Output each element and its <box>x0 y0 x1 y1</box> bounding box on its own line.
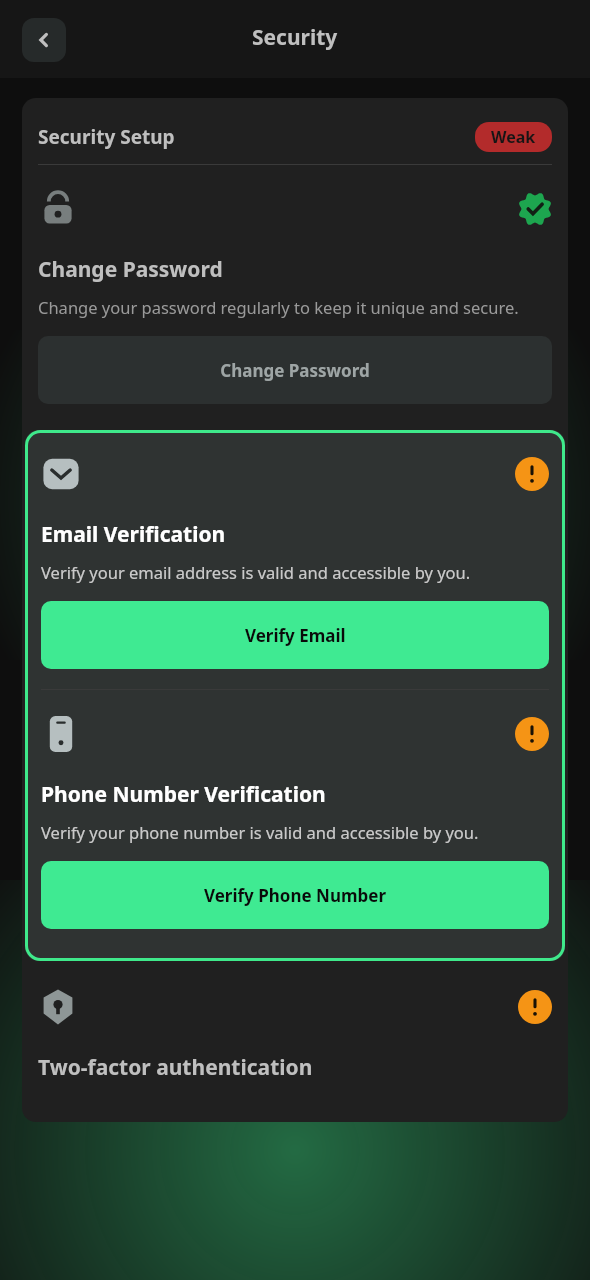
staticText: Phone Number Verification <box>41 780 326 809</box>
other: Completed <box>518 192 552 226</box>
staticText: Change Password <box>38 255 223 284</box>
staticText: Two-factor authentication <box>38 1053 313 1082</box>
button[interactable]: Verify Email <box>41 601 549 669</box>
button[interactable]: Back <box>22 18 66 62</box>
staticText: Security <box>252 23 338 52</box>
other: Action required <box>515 457 549 491</box>
button[interactable]: Verify Phone Number <box>41 861 549 929</box>
staticText: Change your password regularly to keep i… <box>38 296 519 318</box>
staticText: Security Setup <box>38 124 175 150</box>
staticText: Verify Email <box>245 624 346 647</box>
button[interactable]: Change Password <box>38 336 552 404</box>
staticText: Change Password <box>220 359 370 382</box>
other: Action required <box>515 717 549 751</box>
staticText: Verify Phone Number <box>204 884 387 907</box>
staticText: Email Verification <box>41 520 226 549</box>
staticText: Verify your email address is valid and a… <box>41 561 471 583</box>
staticText: Verify your phone number is valid and ac… <box>41 821 479 843</box>
other: Action required <box>518 990 552 1024</box>
staticText: Weak <box>491 126 536 148</box>
button[interactable]: Weak <box>475 122 552 152</box>
